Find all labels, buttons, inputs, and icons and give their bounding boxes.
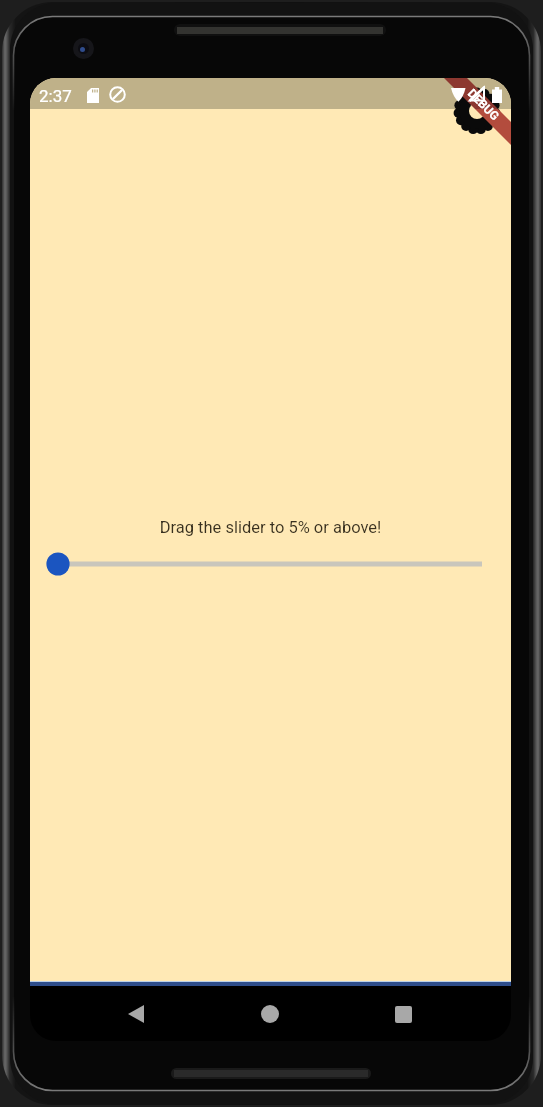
button[interactable]: Recent apps bbox=[381, 992, 425, 1036]
staticText: 2:37 bbox=[39, 86, 72, 106]
button[interactable]: Home bbox=[248, 992, 292, 1036]
button[interactable] bbox=[58, 548, 482, 580]
staticText: DEBUG bbox=[465, 86, 502, 124]
button[interactable]: Back bbox=[114, 992, 158, 1036]
staticText: Drag the slider to 5% or above! bbox=[30, 518, 511, 537]
button[interactable]: Settings bbox=[451, 85, 503, 137]
